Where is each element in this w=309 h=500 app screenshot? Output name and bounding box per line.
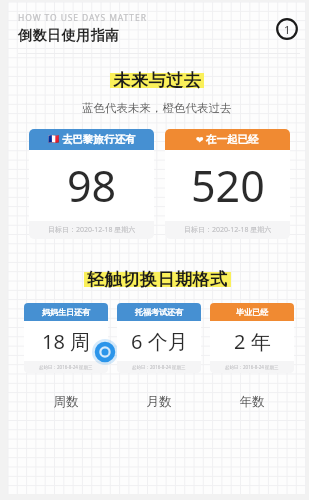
staticText: 轻触切换日期格式 xyxy=(87,269,228,290)
staticText: 蓝色代表未来，橙色代表过去 xyxy=(82,101,232,115)
staticText: 18 周 xyxy=(42,328,91,355)
staticText: 托福考试还有 xyxy=(135,307,183,317)
staticText: 98 xyxy=(67,156,117,215)
staticText: 起始日：2016-8-24 星期三 xyxy=(132,364,186,370)
staticText: 目标日：2020-12-18 星期六 xyxy=(184,225,272,235)
button[interactable]: 毕业已经 xyxy=(210,303,294,373)
staticText: 在一起已经 xyxy=(206,133,259,146)
staticText: 🇫🇷 xyxy=(48,134,60,145)
button[interactable]: 托福考试还有 xyxy=(117,303,201,373)
staticText: 去巴黎旅行还有 xyxy=(62,133,136,146)
staticText: 倒数日使用指南 xyxy=(18,27,120,45)
staticText: 2 年 xyxy=(234,328,271,355)
button[interactable]: ❤️ xyxy=(165,129,290,239)
button[interactable]: 🇫🇷 xyxy=(29,129,154,239)
staticText: 1 xyxy=(284,22,291,37)
staticText: 起始日：2016-8-24 星期三 xyxy=(39,364,93,370)
staticText: 6 个月 xyxy=(131,328,188,355)
staticText: HOW TO USE DAYS MATTER xyxy=(18,12,147,24)
button[interactable]: 妈妈生日还有 xyxy=(24,303,108,373)
staticText: 520 xyxy=(191,156,265,215)
staticText: 毕业已经 xyxy=(236,307,268,317)
staticText: 周数 xyxy=(24,394,108,410)
staticText: ❤️ xyxy=(196,135,204,145)
button[interactable]: Page 1 xyxy=(276,18,298,40)
staticText: 目标日：2020-12-18 星期六 xyxy=(48,225,136,235)
staticText: 妈妈生日还有 xyxy=(42,307,90,317)
staticText: 年数 xyxy=(210,394,294,410)
staticText: 起始日：2016-8-24 星期三 xyxy=(225,364,279,370)
staticText: 未来与过去 xyxy=(113,70,201,91)
staticText: 月数 xyxy=(117,394,201,410)
